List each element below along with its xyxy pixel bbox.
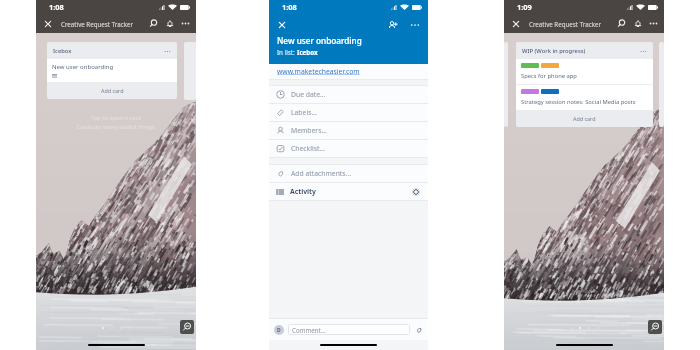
button[interactable]: Notifications: [162, 16, 177, 31]
staticText: www.maketecheasier.com: [277, 67, 360, 76]
button[interactable]: Strategy session notes: Social Media pos…: [516, 85, 653, 110]
button[interactable]: Add card: [47, 82, 177, 99]
button[interactable]: Members...: [269, 122, 428, 139]
staticText: Add attachments...: [291, 169, 352, 178]
button[interactable]: Search: [146, 16, 161, 31]
staticText: Checklist...: [291, 144, 325, 153]
staticText: 1:08: [282, 2, 297, 12]
button[interactable]: Zoom out: [648, 320, 662, 334]
button[interactable]: www.maketecheasier.com: [269, 64, 428, 79]
staticText: Labels...: [291, 108, 317, 117]
button[interactable]: Activity: [269, 183, 428, 200]
staticText: 1:09: [517, 2, 532, 12]
button[interactable]: Labels...: [269, 104, 428, 121]
staticText: Cards do many useful things: [77, 123, 155, 131]
button[interactable]: Zoom out: [180, 320, 194, 334]
button[interactable]: Attach file: [413, 324, 424, 335]
button[interactable]: Specs for phone app: [516, 59, 653, 84]
button[interactable]: Activity settings: [410, 186, 422, 198]
button[interactable]: Close: [509, 17, 523, 31]
button[interactable]: Add attachments...: [269, 165, 428, 182]
button[interactable]: Search: [614, 16, 629, 31]
button[interactable]: More options: [646, 16, 661, 31]
staticText: Icebox: [297, 48, 318, 56]
button[interactable]: Add member: [386, 18, 400, 32]
staticText: New user onboarding: [277, 35, 362, 46]
staticText: Add card: [101, 87, 124, 94]
button[interactable]: List menu: [638, 46, 648, 56]
staticText: Due date...: [291, 90, 326, 99]
button[interactable]: Notifications: [630, 16, 645, 31]
staticText: Creative Request Tracker: [61, 20, 133, 28]
staticText: Specs for phone app: [521, 72, 577, 80]
staticText: Activity: [290, 187, 316, 196]
staticText: Comment...: [292, 326, 326, 334]
staticText: D: [277, 327, 281, 334]
staticText: Creative Request Tracker: [529, 20, 601, 28]
staticText: Icebox: [53, 47, 72, 55]
staticText: Members...: [291, 126, 327, 135]
button[interactable]: Close: [41, 17, 55, 31]
button[interactable]: Comment...: [288, 324, 410, 335]
button[interactable]: Close: [275, 18, 289, 32]
button[interactable]: [659, 42, 664, 127]
staticText: Strategy session notes: Social Media pos…: [521, 98, 636, 106]
button[interactable]: More options: [408, 18, 422, 32]
button[interactable]: List menu: [162, 46, 172, 56]
staticText: In list:: [277, 48, 297, 56]
button[interactable]: Due date...: [269, 86, 428, 103]
staticText: WIP (Work in progress): [522, 47, 586, 55]
button[interactable]: Add card: [516, 110, 653, 127]
button[interactable]: More options: [178, 16, 193, 31]
staticText: Tap to open a card: [91, 114, 142, 122]
button[interactable]: Checklist...: [269, 140, 428, 157]
staticText: New user onboarding: [52, 63, 114, 71]
staticText: Add card: [573, 115, 596, 122]
staticText: 1:08: [49, 2, 64, 12]
